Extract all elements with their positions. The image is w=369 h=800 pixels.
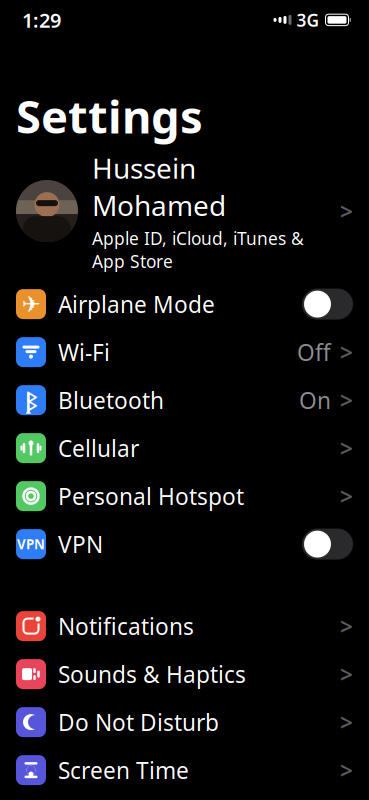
button[interactable]: Sounds & Haptics	[0, 650, 369, 698]
staticText: Apple ID, iCloud, iTunes & App Store	[92, 227, 304, 273]
staticText: On	[299, 385, 331, 415]
staticText: >	[340, 659, 353, 689]
button[interactable]: Screen Time	[0, 746, 369, 794]
button[interactable]: VPN	[0, 520, 369, 568]
staticText: Wi-Fi	[58, 337, 110, 367]
button[interactable]: Wi-Fi	[0, 328, 369, 376]
button[interactable]: Do Not Disturb	[0, 698, 369, 746]
staticText: Bluetooth	[58, 385, 164, 415]
staticText: Screen Time	[58, 755, 189, 785]
staticText: >	[340, 611, 353, 641]
staticText: Personal Hotspot	[58, 481, 244, 511]
staticText: >	[340, 755, 353, 785]
button[interactable]: ᛒ	[0, 376, 369, 424]
staticText: ᛒ	[25, 385, 37, 415]
staticText: >	[340, 433, 353, 463]
staticText: ✈	[21, 291, 40, 317]
staticText: VPN	[58, 529, 103, 559]
staticText: >	[340, 481, 353, 511]
button[interactable]: ✈	[0, 280, 369, 328]
staticText: Off	[297, 337, 331, 367]
staticText: 1:29	[22, 7, 61, 33]
button[interactable]: Notifications	[0, 602, 369, 650]
staticText: Settings	[16, 86, 203, 146]
staticText: Notifications	[58, 611, 194, 641]
staticText: >	[340, 707, 353, 737]
staticText: Cellular	[58, 433, 139, 463]
staticText: Sounds & Haptics	[58, 659, 246, 689]
staticText: >	[340, 196, 353, 226]
staticText: >	[340, 337, 353, 367]
staticText: VPN	[17, 535, 45, 553]
staticText: 3G	[296, 8, 319, 31]
staticText: Airplane Mode	[58, 289, 215, 319]
staticText: Hussein Mohamed	[92, 149, 226, 224]
button[interactable]: Cellular	[0, 424, 369, 472]
button[interactable]: Hussein Mohamed	[0, 168, 369, 254]
staticText: Do Not Disturb	[58, 707, 219, 737]
button[interactable]: Personal Hotspot	[0, 472, 369, 520]
staticText: >	[340, 385, 353, 415]
